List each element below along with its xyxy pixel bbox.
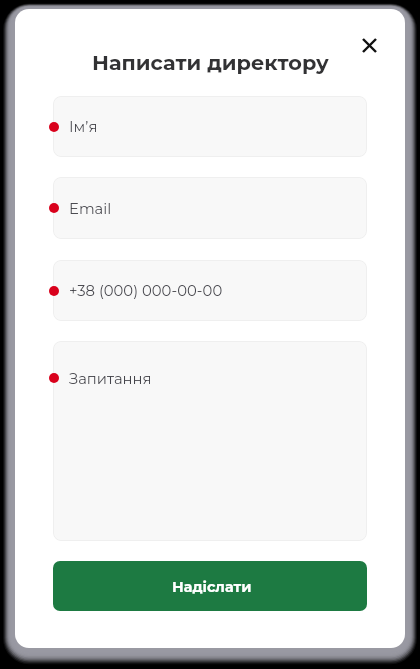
button[interactable] — [53, 341, 367, 541]
staticText: Запитання — [69, 370, 152, 388]
button[interactable]: Закрити — [352, 28, 387, 63]
staticText: Написати директору — [92, 50, 329, 75]
staticText: Надіслати — [172, 578, 252, 596]
staticText: Ім’я — [69, 118, 98, 136]
button[interactable] — [53, 96, 367, 157]
button[interactable] — [53, 177, 367, 239]
button[interactable] — [53, 260, 367, 321]
button[interactable]: Надіслати — [53, 561, 367, 611]
staticText: Email — [69, 200, 112, 218]
staticText: +38 (000) 000-00-00 — [69, 282, 223, 300]
